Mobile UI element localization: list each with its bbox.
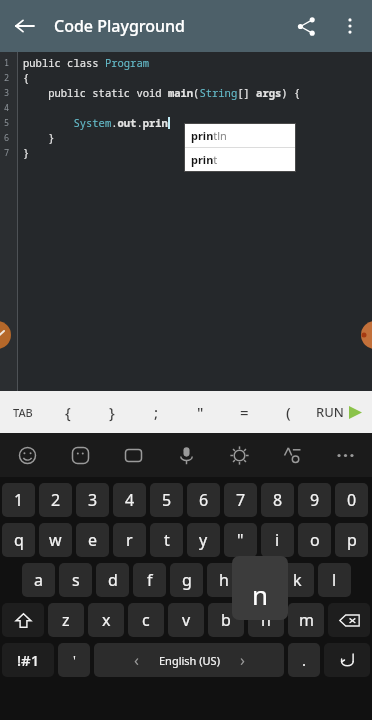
staticText: 7: [4, 147, 10, 159]
button[interactable]: Backspace: [328, 603, 370, 637]
button[interactable]: print: [185, 148, 295, 171]
staticText: 5: [162, 489, 172, 511]
staticText: {: [23, 71, 30, 85]
button[interactable]: Translate: [266, 433, 319, 477]
button[interactable]: s: [59, 563, 92, 597]
staticText: 2: [4, 72, 10, 84]
staticText: i: [275, 529, 280, 551]
button[interactable]: h: [207, 563, 240, 597]
staticText: n: [261, 609, 271, 631]
button[interactable]: 3: [76, 483, 109, 517]
button[interactable]: p: [335, 523, 368, 557]
button[interactable]: ‹: [94, 643, 284, 677]
button[interactable]: More options: [328, 4, 372, 48]
staticText: 9: [310, 489, 320, 511]
button[interactable]: f: [133, 563, 166, 597]
button[interactable]: k: [281, 563, 314, 597]
button[interactable]: q: [2, 523, 35, 557]
staticText: w: [49, 529, 62, 551]
staticText: 1: [4, 57, 10, 69]
staticText: English (US): [159, 653, 220, 668]
button[interactable]: 8: [261, 483, 294, 517]
button[interactable]: v: [168, 603, 204, 637]
staticText: public static void main(String[] args) {: [23, 86, 301, 100]
button[interactable]: l: [318, 563, 351, 597]
staticText: Code Playground: [54, 15, 186, 37]
staticText: y: [199, 529, 208, 551]
button[interactable]: a: [22, 563, 55, 597]
staticText: b: [221, 609, 231, 631]
button[interactable]: ": [178, 391, 222, 433]
button[interactable]: TAB: [0, 391, 45, 433]
button[interactable]: !#1: [2, 643, 54, 677]
button[interactable]: o: [298, 523, 331, 557]
staticText: o: [310, 529, 320, 551]
button[interactable]: c: [128, 603, 164, 637]
button[interactable]: }: [90, 391, 134, 433]
button[interactable]: 9: [298, 483, 331, 517]
button[interactable]: Shift: [2, 603, 44, 637]
button[interactable]: 4: [113, 483, 146, 517]
staticText: print: [191, 152, 218, 167]
button[interactable]: d: [96, 563, 129, 597]
staticText: f: [147, 569, 153, 591]
staticText: System.out.prin: [23, 116, 168, 130]
button[interactable]: Settings: [213, 433, 266, 477]
button[interactable]: Back: [2, 4, 46, 48]
staticText: public class Program: [23, 56, 149, 70]
button[interactable]: Stickers: [54, 433, 107, 477]
staticText: 4: [125, 489, 135, 511]
button[interactable]: Enter: [324, 643, 370, 677]
button[interactable]: ": [224, 523, 257, 557]
button[interactable]: y: [187, 523, 220, 557]
button[interactable]: b: [208, 603, 244, 637]
staticText: g: [182, 569, 192, 591]
button[interactable]: 5: [150, 483, 183, 517]
staticText: v: [182, 609, 191, 631]
button[interactable]: i: [261, 523, 294, 557]
button[interactable]: 6: [187, 483, 220, 517]
staticText: a: [34, 569, 43, 591]
button[interactable]: e: [76, 523, 109, 557]
staticText: 6: [199, 489, 209, 511]
button[interactable]: j: [244, 563, 277, 597]
button[interactable]: ': [58, 643, 90, 677]
staticText: h: [219, 569, 229, 591]
button[interactable]: 0: [335, 483, 368, 517]
button[interactable]: RUN: [306, 391, 372, 433]
button[interactable]: Voice input: [160, 433, 213, 477]
staticText: TAB: [13, 405, 33, 420]
button[interactable]: 2: [39, 483, 72, 517]
button[interactable]: 1: [2, 483, 35, 517]
button[interactable]: t: [150, 523, 183, 557]
button[interactable]: Emoji: [0, 433, 54, 477]
staticText: p: [347, 529, 357, 551]
staticText: 3: [4, 87, 10, 99]
button[interactable]: r: [113, 523, 146, 557]
staticText: l: [332, 569, 337, 591]
staticText: 3: [88, 489, 98, 511]
staticText: ›: [240, 649, 245, 671]
button[interactable]: =: [222, 391, 266, 433]
button[interactable]: n: [248, 603, 284, 637]
button[interactable]: g: [170, 563, 203, 597]
button[interactable]: More: [319, 433, 372, 477]
staticText: !#1: [17, 650, 40, 670]
button[interactable]: ;: [134, 391, 178, 433]
button[interactable]: w: [39, 523, 72, 557]
staticText: .: [302, 650, 307, 670]
button[interactable]: println: [185, 124, 295, 147]
staticText: {: [65, 402, 71, 422]
button[interactable]: GIF: [107, 433, 160, 477]
button[interactable]: z: [48, 603, 84, 637]
staticText: 2: [51, 489, 61, 511]
button[interactable]: x: [88, 603, 124, 637]
button[interactable]: 7: [224, 483, 257, 517]
button[interactable]: {: [45, 391, 90, 433]
button[interactable]: (: [266, 391, 310, 433]
staticText: }: [23, 146, 30, 160]
button[interactable]: .: [288, 643, 320, 677]
staticText: x: [102, 609, 111, 631]
button[interactable]: Share: [284, 4, 328, 48]
button[interactable]: m: [288, 603, 324, 637]
